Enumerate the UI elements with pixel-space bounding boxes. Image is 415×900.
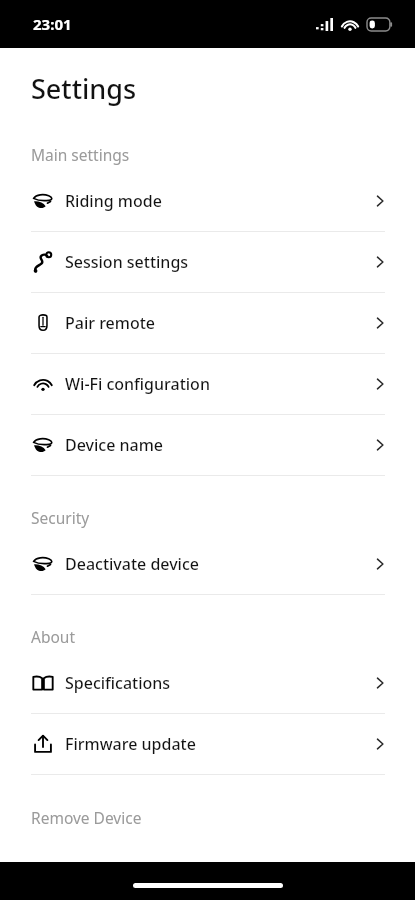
- button[interactable]: Session settings: [0, 232, 415, 292]
- button[interactable]: Remove Device: [0, 805, 415, 838]
- button[interactable]: Pair remote: [0, 293, 415, 353]
- staticText: Settings: [31, 70, 137, 107]
- staticText: 23:01: [33, 14, 72, 34]
- button[interactable]: Firmware update: [0, 714, 415, 774]
- staticText: Remove Device: [31, 807, 142, 828]
- staticText: Security: [31, 507, 90, 528]
- button[interactable]: Device name: [0, 415, 415, 475]
- staticText: Deactivate device: [65, 553, 371, 575]
- staticText: Wi-Fi configuration: [65, 373, 371, 395]
- staticText: Riding mode: [65, 190, 371, 212]
- staticText: Main settings: [31, 144, 130, 165]
- staticText: Firmware update: [65, 733, 371, 755]
- button[interactable]: Riding mode: [0, 171, 415, 231]
- staticText: About: [31, 626, 75, 647]
- button[interactable]: Wi-Fi configuration: [0, 354, 415, 414]
- staticText: Session settings: [65, 251, 371, 273]
- staticText: Pair remote: [65, 312, 371, 334]
- staticText: Device name: [65, 434, 371, 456]
- staticText: Specifications: [65, 672, 371, 694]
- button[interactable]: Deactivate device: [0, 534, 415, 594]
- button[interactable]: Specifications: [0, 653, 415, 713]
